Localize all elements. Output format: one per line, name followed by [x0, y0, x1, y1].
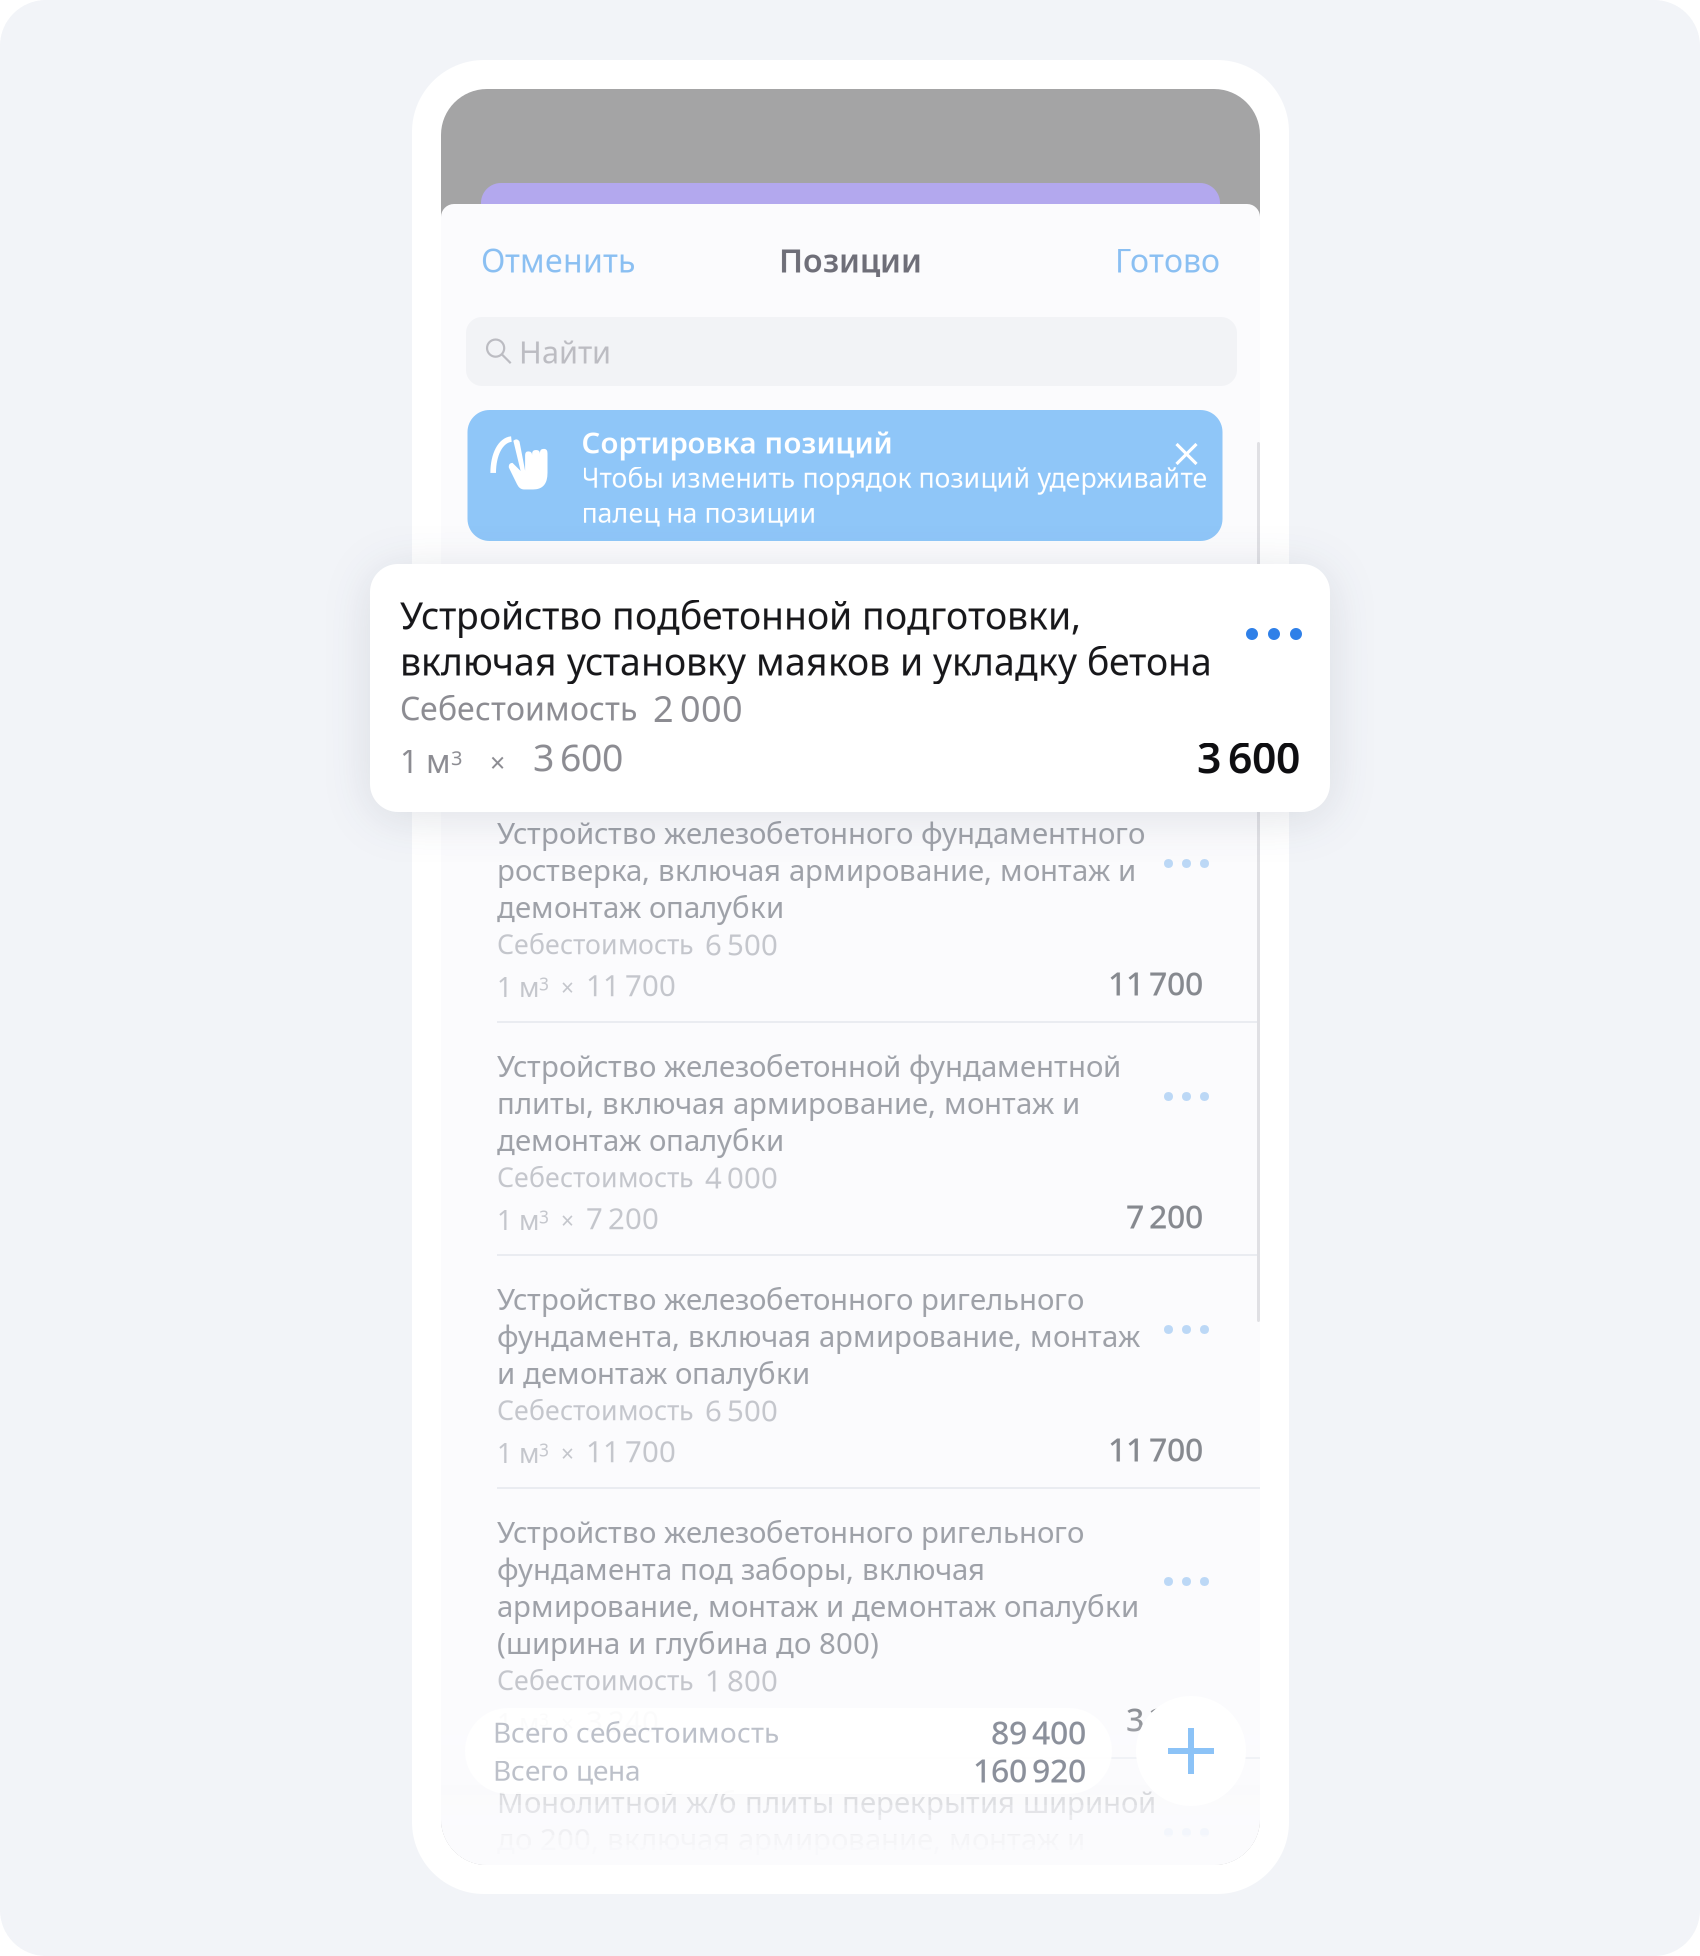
staticText: 7 200 — [586, 1198, 659, 1237]
staticText: 1 м — [400, 739, 451, 782]
staticText: демонтаж опалубки — [497, 1120, 784, 1159]
staticText: 3 600 — [1197, 729, 1300, 785]
staticText: 1 м — [497, 736, 539, 771]
staticText: × — [462, 744, 533, 780]
staticText: 3 — [539, 1205, 549, 1228]
staticText: Себестоимость — [497, 1159, 694, 1195]
staticText: армирование, монтаж и демонтаж опалубки — [497, 1586, 1139, 1625]
staticText: 6 500 — [705, 924, 778, 963]
staticText: 6 500 — [705, 1390, 778, 1429]
staticText: 3 240 — [586, 1701, 659, 1740]
staticText: 1 м — [497, 1705, 539, 1740]
staticText: Готово — [1115, 239, 1220, 281]
staticText: палец на позиции — [581, 495, 816, 530]
button[interactable]: Действия с позицией — [1164, 1577, 1209, 1586]
staticText: Устройство подбетонной подготовки, — [400, 590, 1081, 640]
button[interactable]: Готово — [1115, 239, 1220, 281]
staticText: 3 — [539, 1708, 549, 1731]
staticText: 3 240 — [1126, 1698, 1203, 1740]
staticText: Себестоимость — [497, 926, 694, 962]
staticText: × — [549, 972, 586, 1002]
staticText: Позиции — [779, 239, 922, 281]
staticText: 4 000 — [705, 1157, 778, 1196]
staticText — [497, 654, 505, 693]
staticText: Монолитной ж/б плиты перекрытия шириной — [497, 1782, 1156, 1821]
staticText: включая установку маяков и укладку бетон… — [497, 617, 1135, 656]
staticText: × — [549, 739, 586, 769]
staticText: Себестоимость — [497, 693, 694, 729]
staticText: Себестоимость — [400, 687, 637, 729]
staticText: (ширина и глубина до 800) — [497, 1623, 879, 1662]
staticText: 11 700 — [586, 1431, 676, 1470]
button[interactable]: Действия с позицией — [1164, 859, 1209, 868]
staticText: × — [549, 1708, 586, 1738]
staticText: 3 600 — [586, 732, 659, 771]
button[interactable]: Найти — [466, 317, 1237, 386]
staticText: плиты, включая армирование, монтаж и — [497, 1083, 1080, 1122]
staticText: фундамента, включая армирование, монтаж — [497, 1316, 1140, 1355]
staticText: Всего себестоимость — [493, 1713, 779, 1751]
staticText: 11 700 — [1108, 962, 1203, 1004]
staticText: 1 800 — [705, 1660, 778, 1699]
staticText: Отменить — [481, 239, 635, 281]
staticText: 2 000 — [705, 691, 778, 730]
staticText: 11 700 — [1108, 1428, 1203, 1470]
staticText: 2 000 — [653, 684, 743, 732]
staticText: 3 600 — [1126, 729, 1203, 771]
staticText: 7 200 — [1126, 1195, 1203, 1237]
staticText: 3 — [539, 972, 549, 995]
button[interactable]: Действия с позицией — [1164, 1092, 1209, 1101]
staticText: Чтобы изменить порядок позиций удерживай… — [581, 460, 1207, 495]
staticText: × — [549, 1205, 586, 1235]
button[interactable]: Отменить — [481, 239, 635, 281]
staticText: Себестоимость — [497, 1392, 694, 1428]
staticText: Устройство железобетонного ригельного — [497, 1279, 1084, 1318]
staticText: и демонтаж опалубки — [497, 1353, 810, 1392]
staticText: Найти — [519, 331, 611, 372]
staticText: 11 700 — [586, 965, 676, 1004]
button[interactable]: Действия с позицией — [1164, 1325, 1209, 1334]
staticText: 3 600 — [533, 732, 623, 782]
staticText: 89 400 — [991, 1711, 1086, 1753]
button[interactable]: Действия с позицией — [1164, 1828, 1209, 1837]
button[interactable]: Закрыть подсказку — [1154, 422, 1218, 486]
staticText: 1 м — [497, 1202, 539, 1237]
staticText: Устройство подбетонной подготовки, — [497, 580, 1032, 619]
staticText: включая установку маяков и укладку бетон… — [400, 636, 1212, 686]
button[interactable]: Действия с позицией — [1246, 628, 1302, 640]
staticText: 3 — [451, 744, 462, 771]
staticText: 3 — [539, 739, 549, 762]
staticText: Устройство железобетонной фундаментной — [497, 1046, 1121, 1085]
staticText: × — [549, 1438, 586, 1468]
staticText: 1 м — [497, 969, 539, 1004]
staticText: 160 920 — [973, 1749, 1086, 1791]
staticText: демонтаж опалубки — [497, 887, 784, 926]
staticText: Всего цена — [493, 1751, 641, 1789]
staticText: фундамента под заборы, включая — [497, 1549, 985, 1588]
button[interactable]: Добавить позицию — [1136, 1696, 1246, 1806]
staticText: Устройство железобетонного фундаментного — [497, 813, 1145, 852]
staticText: 1 м — [497, 1435, 539, 1470]
staticText: ростверка, включая армирование, монтаж и — [497, 850, 1136, 889]
staticText: Сортировка позиций — [581, 422, 892, 461]
staticText: Себестоимость — [497, 1662, 694, 1698]
staticText: Устройство железобетонного ригельного — [497, 1512, 1084, 1551]
staticText: 3 — [539, 1438, 549, 1461]
